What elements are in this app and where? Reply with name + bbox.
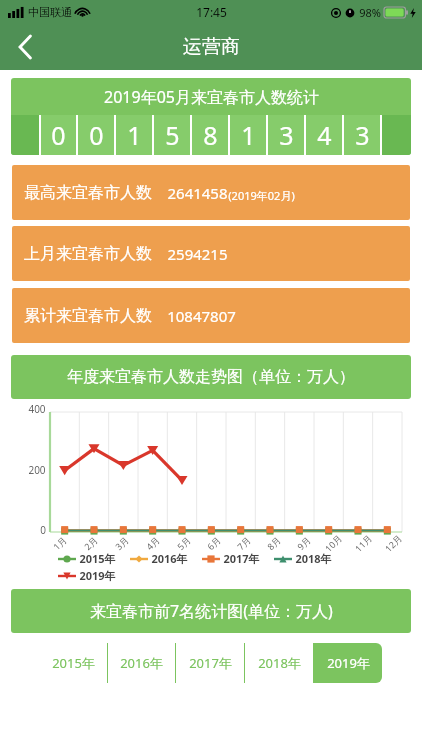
staticText: 1 [241,118,256,152]
staticText: 最高来宜春市人数 [24,183,152,203]
staticText: 2018年 [258,654,301,672]
staticText: (2019年02月) [228,188,295,203]
staticText: 6月 [204,533,223,553]
button[interactable]: 来宜春市前7名统计图(单位：万人) [11,589,411,633]
staticText: 2015年 [79,551,116,566]
button[interactable]: Back [0,24,50,70]
staticText: 12月 [382,532,404,554]
staticText: 17:45 [196,4,227,20]
staticText: 2016年 [151,551,188,566]
staticText: 2019年 [79,568,116,583]
staticText: 0 [89,118,104,152]
staticText: 7月 [234,533,253,553]
staticText: 0 [40,523,46,537]
staticText: 8月 [264,533,283,553]
button[interactable]: 2017年 [176,643,244,683]
staticText: 来宜春市前7名统计图(单位：万人) [90,600,333,622]
staticText: 10月 [322,532,344,554]
staticText: 2019年05月来宜春市人数统计 [104,86,319,108]
button[interactable]: 累计来宜春市人数 [12,288,410,343]
staticText: 2015年 [52,654,95,672]
staticText: 8 [203,118,218,152]
staticText: 2016年 [120,654,163,672]
staticText: 2月 [81,533,100,553]
staticText: 1 [127,118,142,152]
staticText: 2017年 [223,551,260,566]
staticText: 1月 [50,533,69,553]
staticText: 5 [165,118,180,152]
button[interactable]: 年度来宜春市人数走势图（单位：万人） [11,355,411,399]
button[interactable]: 上月来宜春市人数 [12,226,410,281]
staticText: 2594215 [167,244,228,264]
staticText: 200 [28,463,46,477]
staticText: 中国联通 [28,5,72,19]
button[interactable]: 2019年 [314,643,382,683]
button[interactable]: 2018年 [274,551,332,566]
staticText: 3 [355,118,370,152]
button[interactable]: 最高来宜春市人数 [12,165,410,220]
button[interactable]: 2018年 [245,643,313,683]
button[interactable]: 2015年 [58,551,116,566]
staticText: 2641458 [167,183,228,203]
button[interactable]: 2017年 [202,551,260,566]
staticText: 2019年 [327,654,370,672]
button[interactable]: 2016年 [108,643,175,683]
staticText: 3 [279,118,294,152]
staticText: 10847807 [167,306,236,326]
staticText: 4月 [143,533,162,553]
staticText: 年度来宜春市人数走势图（单位：万人） [67,367,355,387]
staticText: 2018年 [295,551,332,566]
staticText: 400 [28,402,46,416]
staticText: 11月 [352,532,374,554]
staticText: 运营商 [183,35,240,59]
staticText: 累计来宜春市人数 [24,306,152,326]
staticText: 9月 [294,533,313,553]
button[interactable]: 2016年 [130,551,188,566]
button[interactable]: 2015年 [40,643,107,683]
staticText: 98% [359,5,381,20]
staticText: 0 [51,118,66,152]
staticText: 3月 [112,533,131,553]
staticText: 上月来宜春市人数 [24,244,152,264]
staticText: 5月 [174,533,193,553]
button[interactable]: 2019年 [58,568,116,583]
staticText: 4 [317,118,332,152]
staticText: 2017年 [189,654,232,672]
